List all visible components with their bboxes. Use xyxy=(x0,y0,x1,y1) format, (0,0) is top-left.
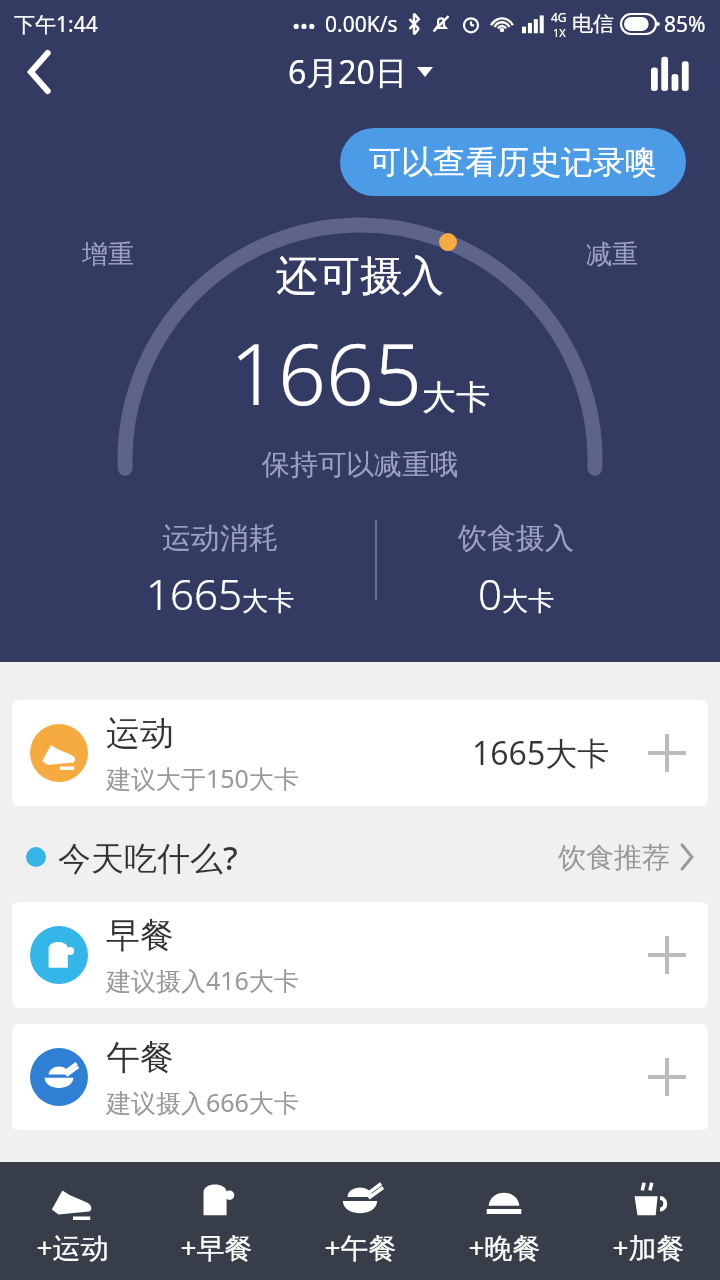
staticText: 85% xyxy=(664,10,706,39)
staticText: 可以查看历史记录噢 xyxy=(369,142,657,182)
staticText: 保持可以减重哦 xyxy=(262,447,458,482)
staticText: 0 xyxy=(478,565,502,622)
button[interactable]: 可以查看历史记录噢 xyxy=(340,128,686,196)
staticText: 增重 xyxy=(82,238,134,271)
button[interactable]: History chart xyxy=(642,48,702,96)
staticText: 建议摄入416大卡 xyxy=(106,963,299,997)
staticText: 大卡 xyxy=(242,585,294,618)
staticText: 午餐 xyxy=(106,1036,174,1079)
staticText: 建议摄入666大卡 xyxy=(106,1085,299,1119)
button[interactable]: 今天吃什么? xyxy=(26,828,694,886)
staticText: +午餐 xyxy=(324,1228,397,1266)
staticText: 早餐 xyxy=(106,914,174,957)
staticText: 1665 xyxy=(146,565,242,622)
button[interactable]: 早餐 xyxy=(12,902,708,1008)
staticText: 今天吃什么? xyxy=(58,835,238,880)
staticText: 运动 xyxy=(106,712,174,755)
button[interactable]: +加餐 xyxy=(576,1162,720,1280)
button[interactable]: +运动 xyxy=(0,1162,144,1280)
button[interactable]: Back xyxy=(10,48,70,96)
staticText: 6月20日 xyxy=(288,50,407,94)
button[interactable]: +晚餐 xyxy=(432,1162,576,1280)
staticText: 1X xyxy=(553,25,566,40)
staticText: 饮食摄入 xyxy=(458,520,574,557)
staticText: 还可摄入 xyxy=(276,250,444,303)
button[interactable]: +早餐 xyxy=(144,1162,288,1280)
staticText: 减重 xyxy=(586,238,638,271)
staticText: 电信 xyxy=(572,11,614,37)
button[interactable]: 6月20日 xyxy=(288,50,433,94)
staticText: 下午1:44 xyxy=(14,10,98,39)
staticText: +早餐 xyxy=(180,1228,253,1266)
button[interactable]: 午餐 xyxy=(12,1024,708,1130)
staticText: +运动 xyxy=(36,1228,109,1266)
staticText: 大卡 xyxy=(502,585,554,618)
staticText: +加餐 xyxy=(612,1228,685,1266)
button[interactable]: 运动 xyxy=(12,700,708,806)
staticText: 1665大卡 xyxy=(472,731,610,775)
staticText: 建议大于150大卡 xyxy=(106,761,299,795)
button[interactable]: +午餐 xyxy=(288,1162,432,1280)
staticText: 运动消耗 xyxy=(162,520,278,557)
staticText: 1665 xyxy=(230,315,422,429)
staticText: +晚餐 xyxy=(468,1228,541,1266)
staticText: 大卡 xyxy=(422,376,490,419)
staticText: 4G xyxy=(551,9,567,25)
staticText: 0.00K/s xyxy=(325,10,398,39)
staticText: 饮食推荐 xyxy=(558,840,670,875)
